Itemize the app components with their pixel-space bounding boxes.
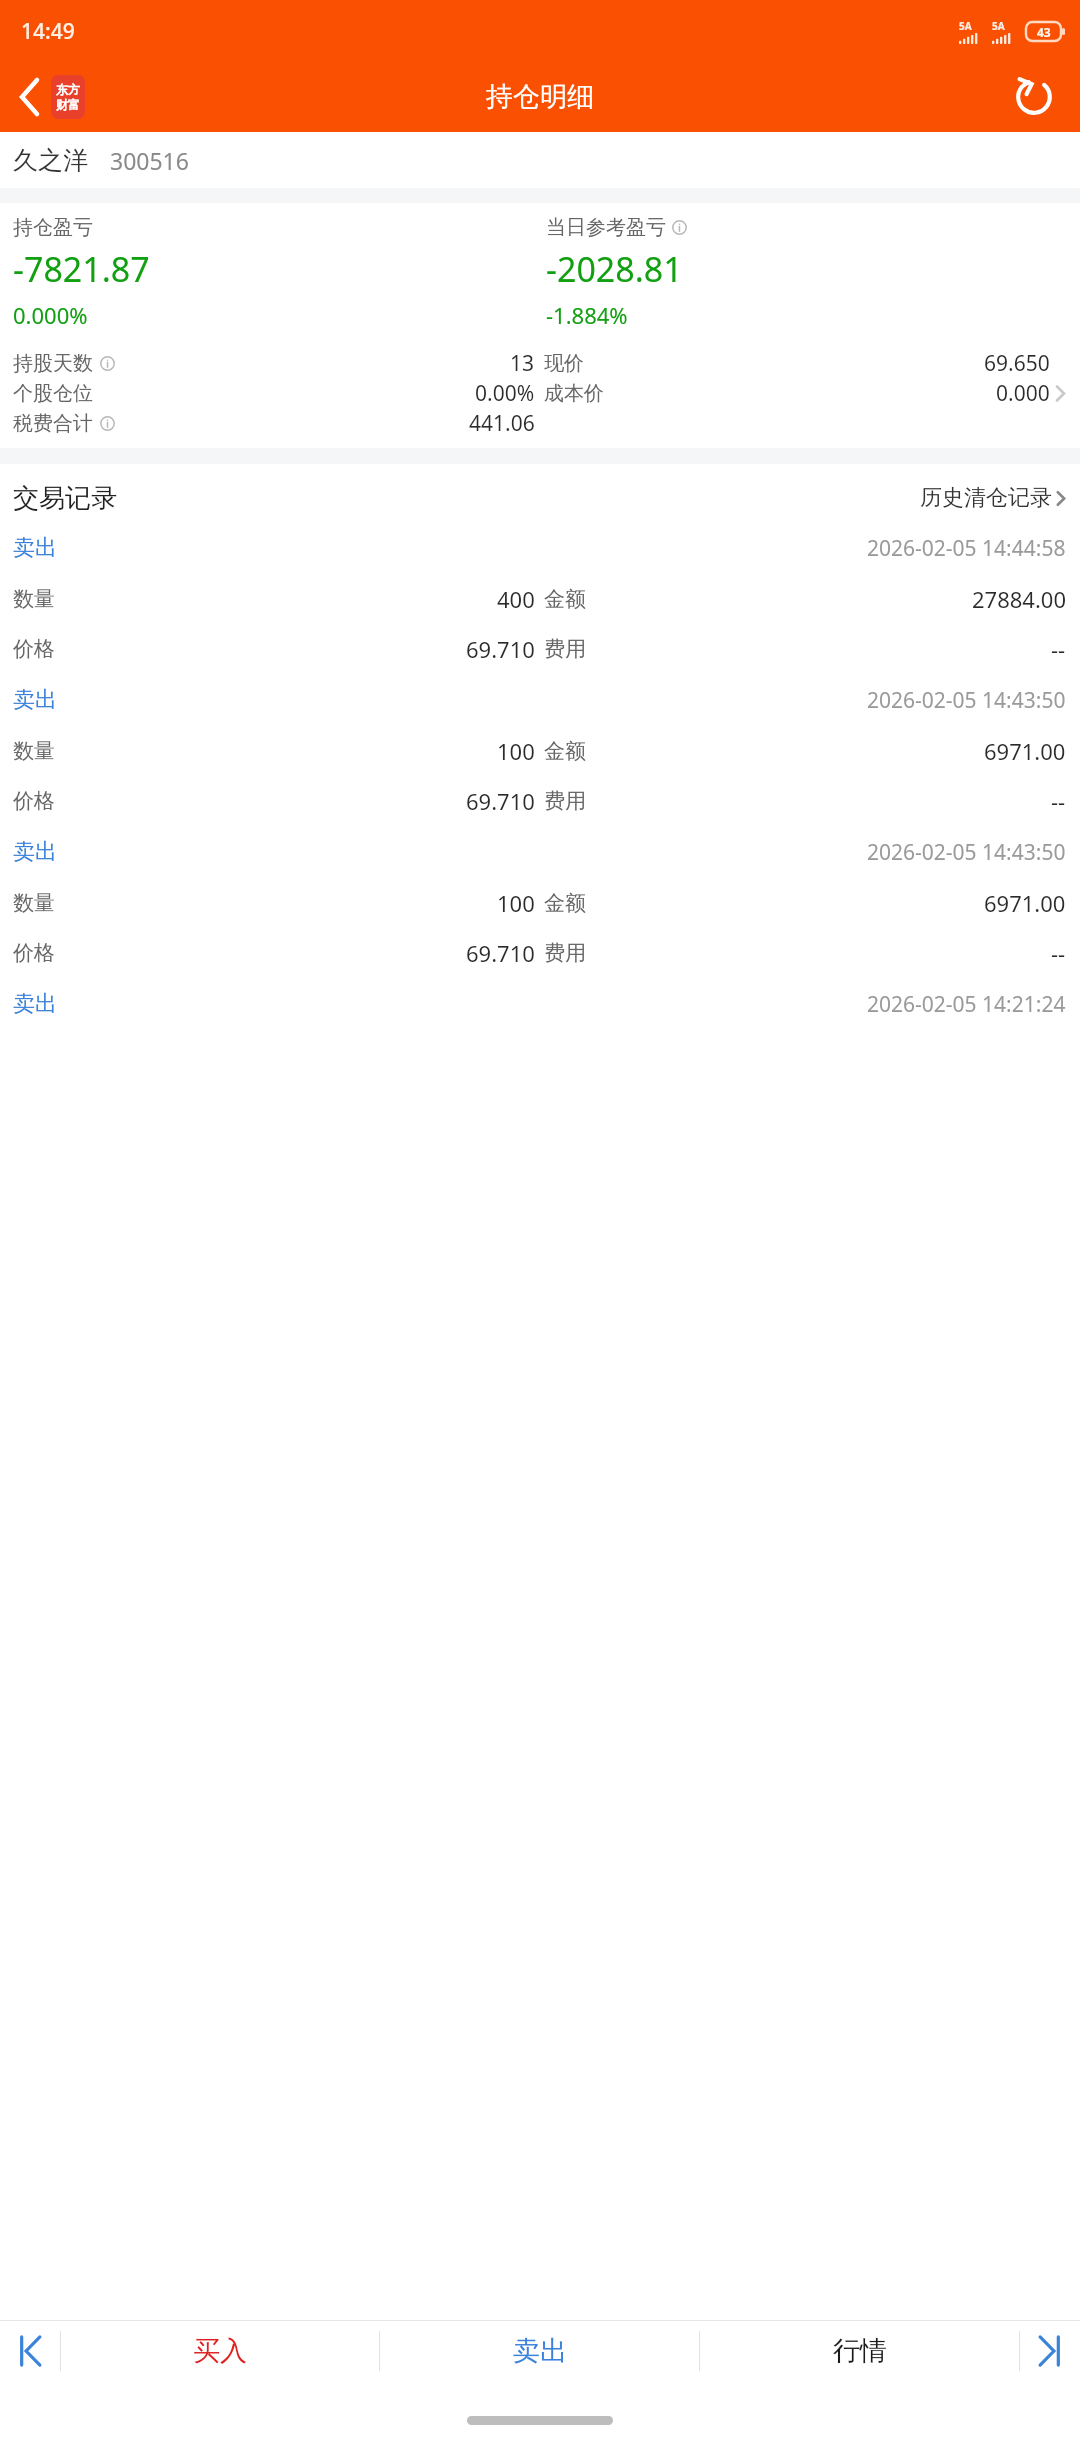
staticText: 买入 [193, 2334, 247, 2368]
staticText: 税费合计 [13, 411, 93, 436]
button[interactable]: 卖出 [380, 2321, 699, 2380]
staticText: -- [1051, 938, 1066, 968]
button[interactable]: 卖出 [0, 988, 1080, 1020]
button[interactable]: 卖出 [0, 684, 1080, 836]
staticText: 69.710 [466, 938, 535, 968]
button[interactable]: 持股天数 [0, 348, 1080, 378]
staticText: -1.884% [546, 300, 628, 330]
staticText: 价格 [13, 940, 55, 966]
staticText: 历史清仓记录 [920, 484, 1052, 512]
button[interactable]: 买入 [61, 2321, 379, 2380]
button[interactable]: 久之洋 [0, 132, 1080, 188]
staticText: 费用 [544, 788, 586, 814]
staticText: 行情 [833, 2334, 887, 2368]
staticText: 6971.00 [984, 888, 1066, 918]
staticText: 441.06 [469, 409, 535, 438]
staticText: 2026-02-05 14:21:24 [867, 990, 1066, 1019]
staticText: 数量 [13, 738, 55, 764]
staticText: 当日参考盈亏 [546, 215, 666, 240]
staticText: 0.000 [996, 379, 1050, 408]
staticText: 卖出 [13, 990, 57, 1018]
staticText: 个股仓位 [13, 381, 93, 406]
staticText: 13 [510, 349, 535, 378]
staticText: 5A [959, 19, 972, 33]
staticText: 费用 [544, 636, 586, 662]
staticText: 0.00% [475, 379, 535, 408]
staticText: 6971.00 [984, 736, 1066, 766]
staticText: 价格 [13, 636, 55, 662]
staticText: 100 [497, 736, 535, 766]
button[interactable]: 卖出 [0, 532, 1080, 684]
button[interactable]: Refresh [1008, 71, 1060, 123]
staticText: 14:49 [21, 17, 75, 46]
staticText: 成本价 [544, 381, 604, 406]
button[interactable]: 税费合计 [0, 408, 1080, 438]
staticText: -2028.81 [546, 246, 683, 292]
staticText: 27884.00 [972, 584, 1066, 614]
staticText: 69.710 [466, 786, 535, 816]
staticText: 持股天数 [13, 351, 93, 376]
staticText: 财富 [56, 97, 80, 112]
staticText: 69.710 [466, 634, 535, 664]
button[interactable]: Next [1020, 2321, 1080, 2380]
staticText: 金额 [544, 738, 586, 764]
staticText: -- [1051, 786, 1066, 816]
staticText: 金额 [544, 890, 586, 916]
staticText: 300516 [110, 145, 189, 176]
staticText: 现价 [544, 351, 584, 376]
button[interactable]: Previous [0, 2321, 60, 2380]
staticText: 卖出 [13, 838, 57, 866]
staticText: 69.650 [984, 349, 1050, 378]
button[interactable]: 历史清仓记录 [920, 478, 1066, 518]
staticText: 43 [1037, 24, 1051, 40]
staticText: 久之洋 [13, 145, 88, 176]
staticText: 金额 [544, 586, 586, 612]
staticText: 2026-02-05 14:43:50 [867, 838, 1066, 867]
button[interactable]: Back [14, 69, 91, 125]
staticText: 100 [497, 888, 535, 918]
staticText: 价格 [13, 788, 55, 814]
staticText: 卖出 [13, 686, 57, 714]
staticText: 卖出 [13, 534, 57, 562]
staticText: 数量 [13, 586, 55, 612]
staticText: -7821.87 [13, 246, 150, 292]
staticText: 400 [497, 584, 535, 614]
staticText: 交易记录 [13, 482, 117, 515]
staticText: 卖出 [513, 2334, 567, 2368]
button[interactable]: 行情 [700, 2321, 1019, 2380]
staticText: -- [1051, 634, 1066, 664]
staticText: 持仓明细 [486, 80, 594, 114]
staticText: 0.000% [13, 300, 88, 330]
staticText: 2026-02-05 14:44:58 [867, 534, 1066, 563]
staticText: 5A [992, 19, 1005, 33]
staticText: 2026-02-05 14:43:50 [867, 686, 1066, 715]
staticText: 数量 [13, 890, 55, 916]
staticText: 费用 [544, 940, 586, 966]
button[interactable]: 个股仓位 [0, 378, 1080, 408]
staticText: 东方 [56, 82, 80, 97]
button[interactable]: 卖出 [0, 836, 1080, 988]
staticText: 持仓盈亏 [13, 215, 93, 240]
